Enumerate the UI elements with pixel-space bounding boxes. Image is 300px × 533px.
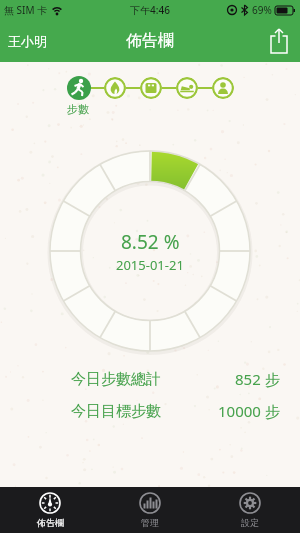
staticText: 無 SIM 卡 bbox=[4, 3, 48, 17]
button[interactable]: 8.52 % bbox=[45, 146, 255, 356]
staticText: 69% bbox=[252, 3, 272, 17]
staticText: 852 步 bbox=[235, 369, 280, 389]
button[interactable] bbox=[140, 77, 162, 99]
staticText: 管理 bbox=[141, 517, 159, 528]
staticText: 佈告欄 bbox=[126, 31, 174, 51]
button[interactable] bbox=[212, 77, 234, 99]
staticText: 佈告欄 bbox=[37, 517, 64, 528]
button[interactable]: 管理 bbox=[100, 487, 200, 533]
staticText: 下午4:46 bbox=[130, 3, 170, 17]
staticText: 今日目標步數 bbox=[71, 402, 161, 421]
staticText: 步數 bbox=[67, 102, 89, 116]
button[interactable]: 佈告欄 bbox=[0, 487, 100, 533]
button[interactable]: 設定 bbox=[200, 487, 300, 533]
staticText: 設定 bbox=[241, 517, 259, 528]
button[interactable] bbox=[270, 28, 288, 54]
button[interactable]: 王小明 bbox=[8, 33, 47, 49]
staticText: 2015-01-21 bbox=[116, 256, 184, 274]
button[interactable] bbox=[67, 76, 91, 100]
staticText: 王小明 bbox=[8, 33, 47, 49]
staticText: 8.52 % bbox=[121, 229, 180, 255]
staticText: 10000 步 bbox=[218, 401, 280, 421]
staticText: 今日步數總計 bbox=[71, 370, 161, 389]
button[interactable] bbox=[176, 77, 198, 99]
button[interactable] bbox=[104, 77, 126, 99]
